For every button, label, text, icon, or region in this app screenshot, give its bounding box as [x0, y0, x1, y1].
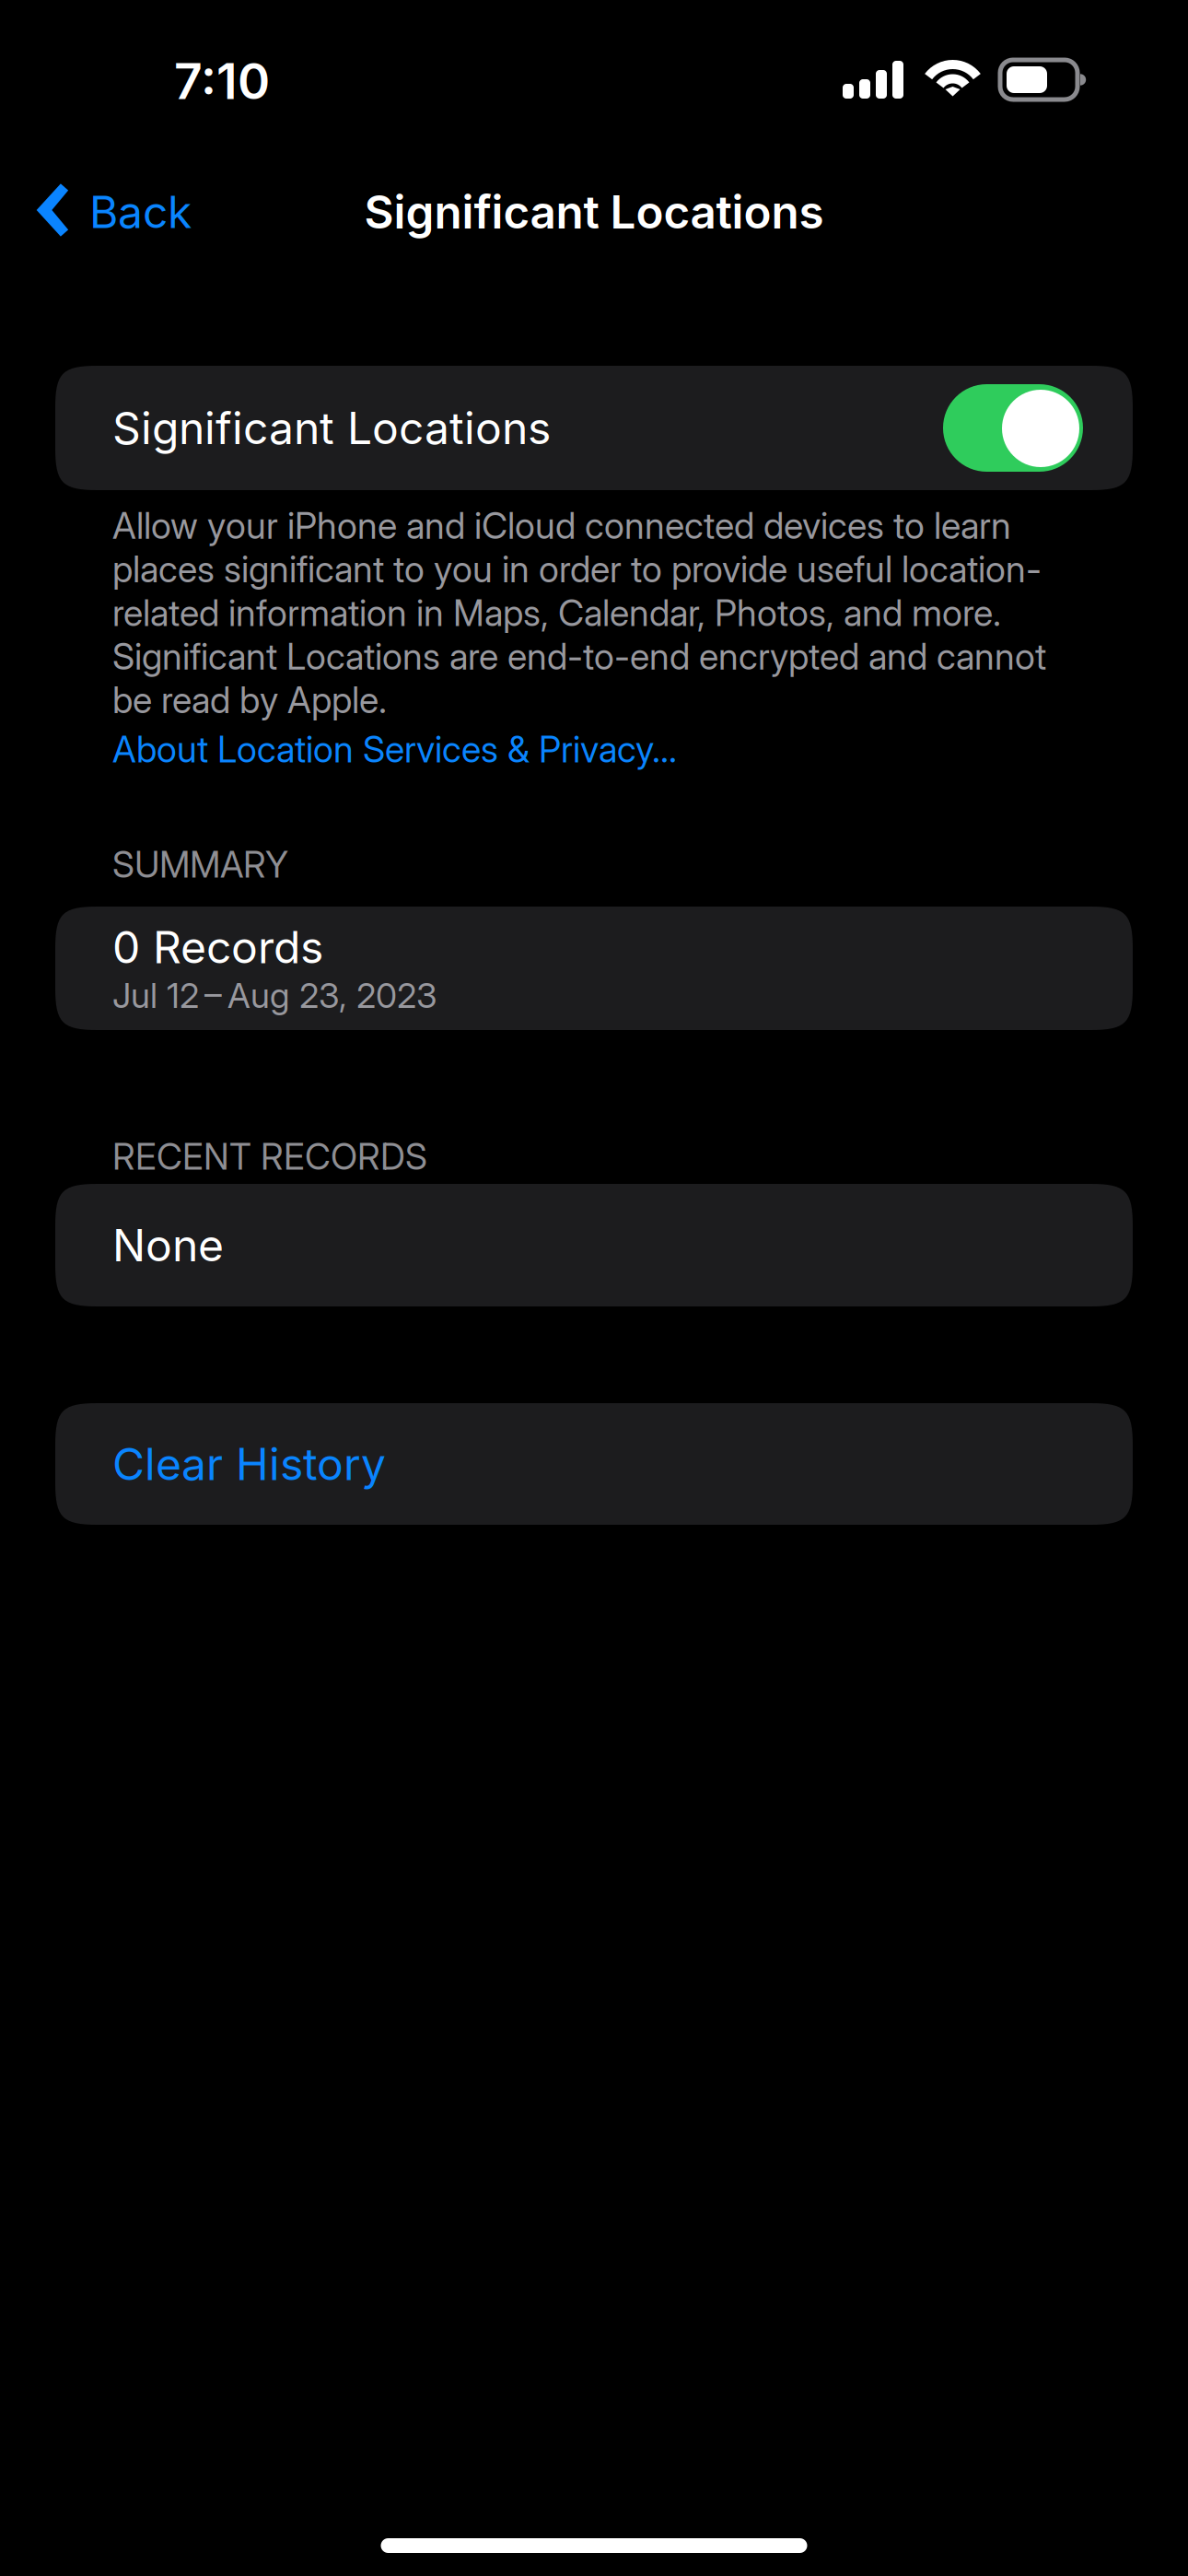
staticText: Significant Locations: [364, 184, 824, 239]
button[interactable]: Clear History: [55, 1403, 1133, 1525]
staticText: Clear History: [112, 1437, 386, 1491]
staticText: 7:10: [174, 51, 270, 111]
button[interactable]: Back: [0, 157, 276, 267]
staticText: Allow your iPhone and iCloud connected d…: [112, 504, 1046, 722]
staticText: SUMMARY: [112, 843, 288, 886]
staticText: Back: [89, 185, 192, 239]
staticText: About Location Services & Privacy...: [112, 728, 677, 771]
staticText: 0 Records: [112, 920, 323, 974]
staticText: Jul 12 – Aug 23, 2023: [112, 975, 437, 1016]
staticText: RECENT RECORDS: [112, 1135, 427, 1178]
staticText: Significant Locations: [112, 401, 551, 455]
staticText: None: [112, 1218, 224, 1272]
button[interactable]: Significant Locations: [55, 366, 1133, 490]
button[interactable]: About Location Services & Privacy...: [112, 729, 1081, 770]
